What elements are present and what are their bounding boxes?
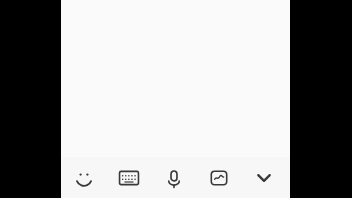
- button[interactable]: Voice input: [151, 157, 196, 198]
- button[interactable]: Collapse keyboard: [241, 157, 286, 198]
- button[interactable]: Emoji: [61, 157, 106, 198]
- button[interactable]: Handwriting: [196, 157, 241, 198]
- button[interactable]: Keyboard: [106, 157, 151, 198]
